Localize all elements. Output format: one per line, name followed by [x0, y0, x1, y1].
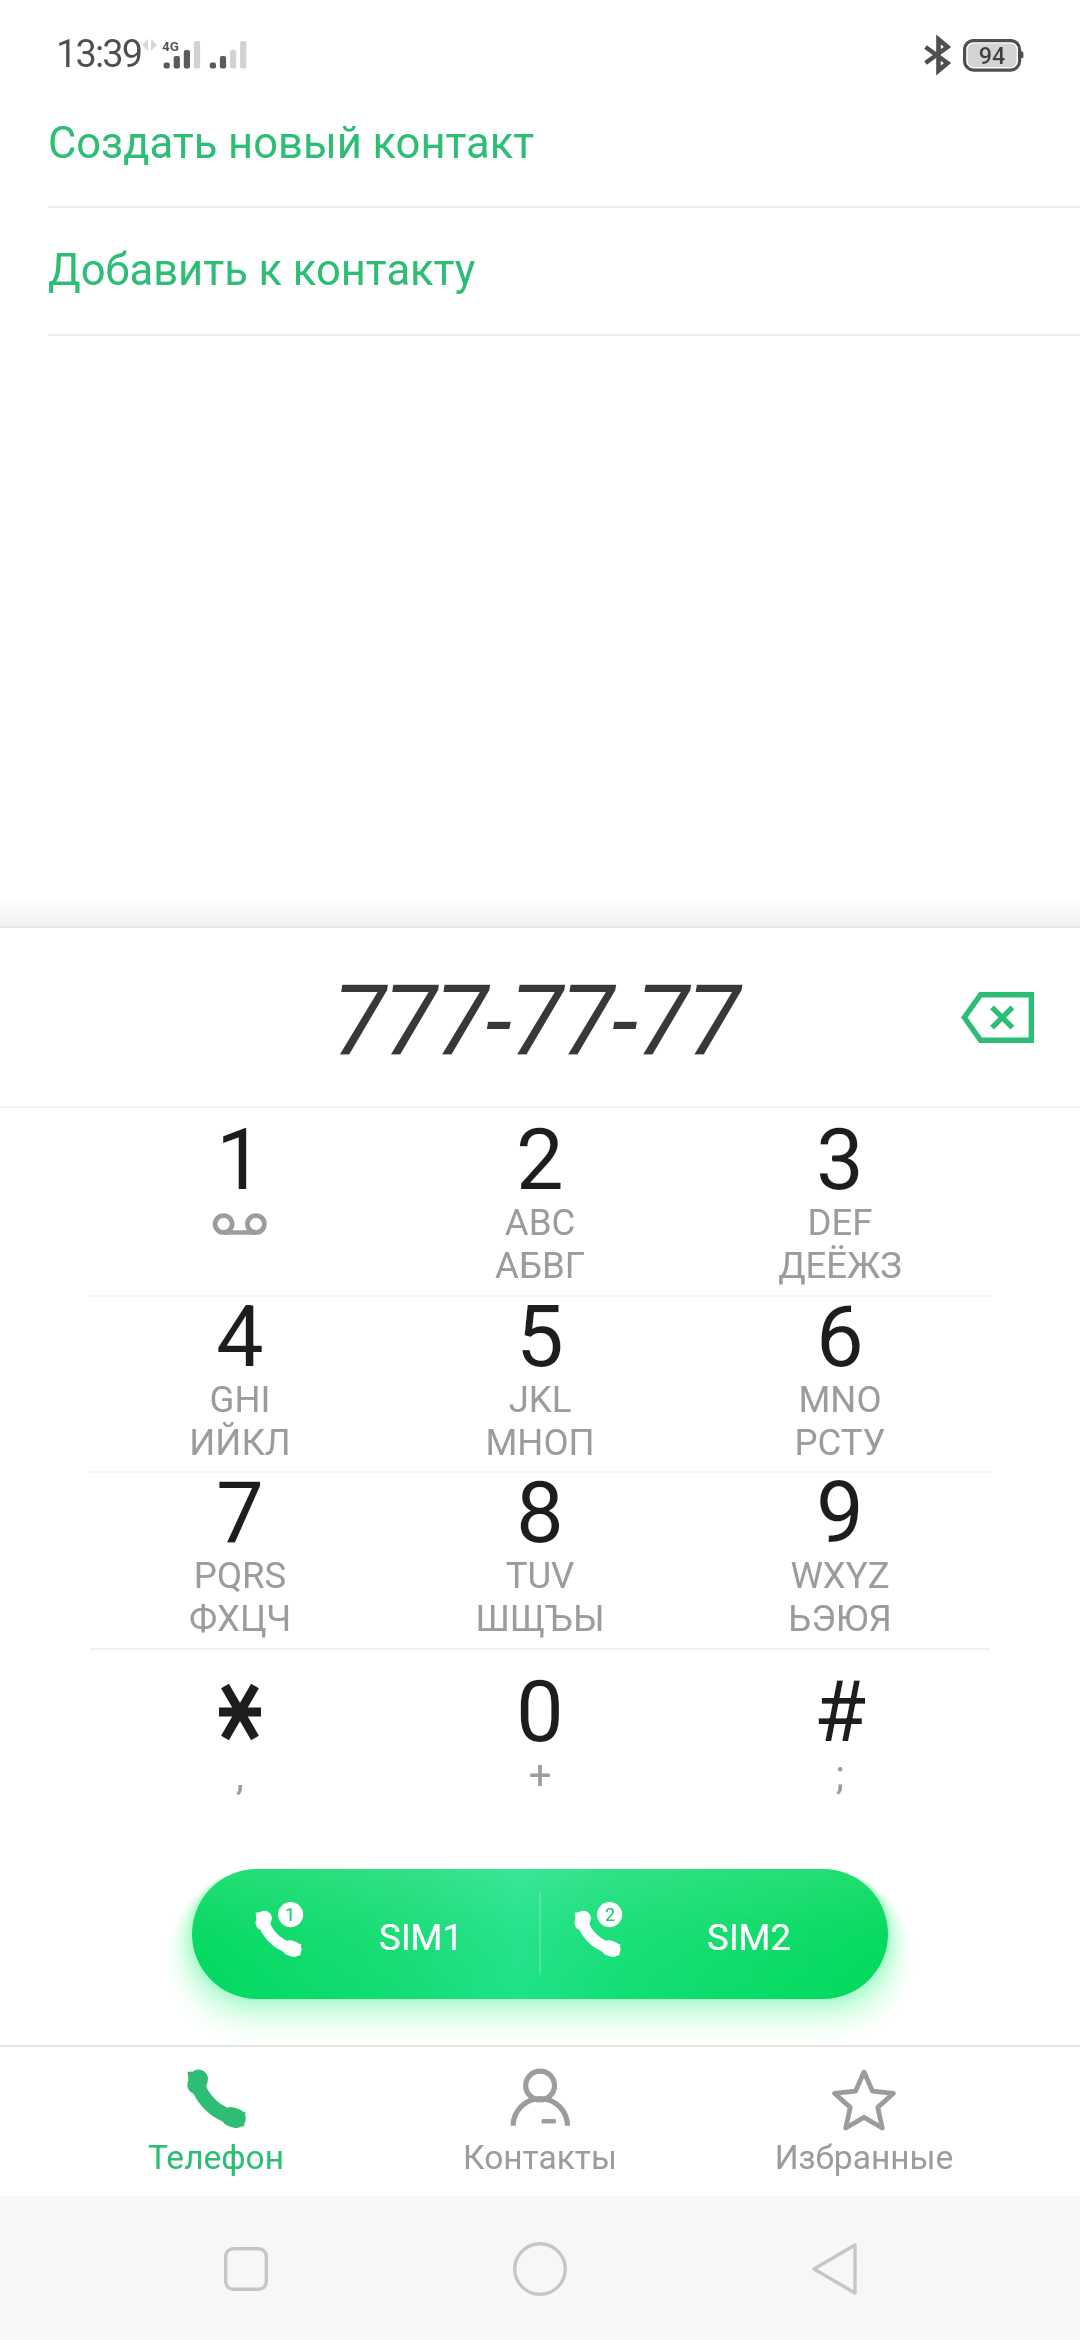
button[interactable]	[690, 1108, 990, 1295]
button[interactable]	[90, 1295, 390, 1471]
staticText: #	[740, 1662, 940, 1762]
staticText: ИЙКЛ	[100, 1421, 380, 1464]
button[interactable]	[390, 1648, 690, 1824]
staticText: 4	[140, 1287, 340, 1387]
staticText: SIM1	[321, 1916, 521, 1959]
staticText: PQRS	[100, 1554, 380, 1597]
button[interactable]	[36, 2056, 396, 2196]
staticText: 94	[962, 42, 1022, 70]
staticText: 6	[740, 1287, 940, 1387]
staticText: РСТУ	[700, 1421, 980, 1464]
staticText: 7	[140, 1463, 340, 1563]
staticText: GHI	[100, 1378, 380, 1421]
staticText: DEF	[700, 1201, 980, 1244]
button[interactable]	[390, 1108, 690, 1295]
staticText: MNO	[700, 1378, 980, 1421]
staticText: АБВГ	[400, 1244, 680, 1287]
staticText: МНОП	[400, 1421, 680, 1464]
staticText: 13:39	[56, 32, 142, 77]
button[interactable]	[684, 2056, 1044, 2196]
staticText: 8	[440, 1463, 640, 1563]
staticText: Телефон	[66, 2138, 366, 2177]
staticText: 1	[270, 1904, 310, 1925]
staticText: ,	[140, 1752, 340, 1799]
button[interactable]	[390, 1471, 690, 1648]
staticText: 3	[740, 1110, 940, 1210]
button[interactable]	[192, 1869, 540, 1999]
staticText: ШЩЪЫ	[400, 1597, 680, 1640]
staticText: ДЕЁЖЗ	[700, 1244, 980, 1287]
button[interactable]: Home	[420, 2196, 660, 2340]
staticText: ФХЦЧ	[100, 1597, 380, 1640]
button[interactable]	[0, 79, 1080, 207]
button[interactable]: Recent apps	[126, 2196, 366, 2340]
button[interactable]: Back	[714, 2196, 954, 2340]
staticText: 1	[140, 1110, 340, 1210]
button[interactable]	[390, 1295, 690, 1471]
staticText: ;	[740, 1752, 940, 1799]
staticText: 2	[440, 1110, 640, 1210]
staticText: 9	[740, 1463, 940, 1563]
button[interactable]	[90, 1648, 390, 1824]
staticText: SIM2	[649, 1916, 849, 1959]
button[interactable]	[90, 1108, 390, 1295]
button[interactable]	[90, 1471, 390, 1648]
staticText: Контакты	[380, 2138, 700, 2177]
staticText: 5	[440, 1287, 640, 1387]
button[interactable]	[690, 1295, 990, 1471]
staticText: +	[440, 1752, 640, 1799]
staticText: 2	[590, 1904, 630, 1925]
button[interactable]	[690, 1471, 990, 1648]
button[interactable]: Delete	[939, 959, 1056, 1076]
staticText: ЬЭЮЯ	[700, 1597, 980, 1640]
staticText: TUV	[400, 1554, 680, 1597]
staticText: Добавить к контакту	[48, 245, 476, 296]
staticText: JKL	[400, 1378, 680, 1421]
staticText: Избранные	[694, 2138, 1034, 2177]
staticText: Создать новый контакт	[48, 118, 535, 169]
staticText: 777-77-77	[135, 964, 935, 1079]
button[interactable]	[0, 208, 1080, 335]
button[interactable]	[540, 1869, 888, 1999]
staticText: ABC	[400, 1201, 680, 1244]
button[interactable]	[690, 1648, 990, 1824]
button[interactable]	[360, 2056, 720, 2196]
staticText: 0	[440, 1662, 640, 1762]
staticText: 4G	[162, 38, 179, 54]
staticText: WXYZ	[700, 1554, 980, 1597]
